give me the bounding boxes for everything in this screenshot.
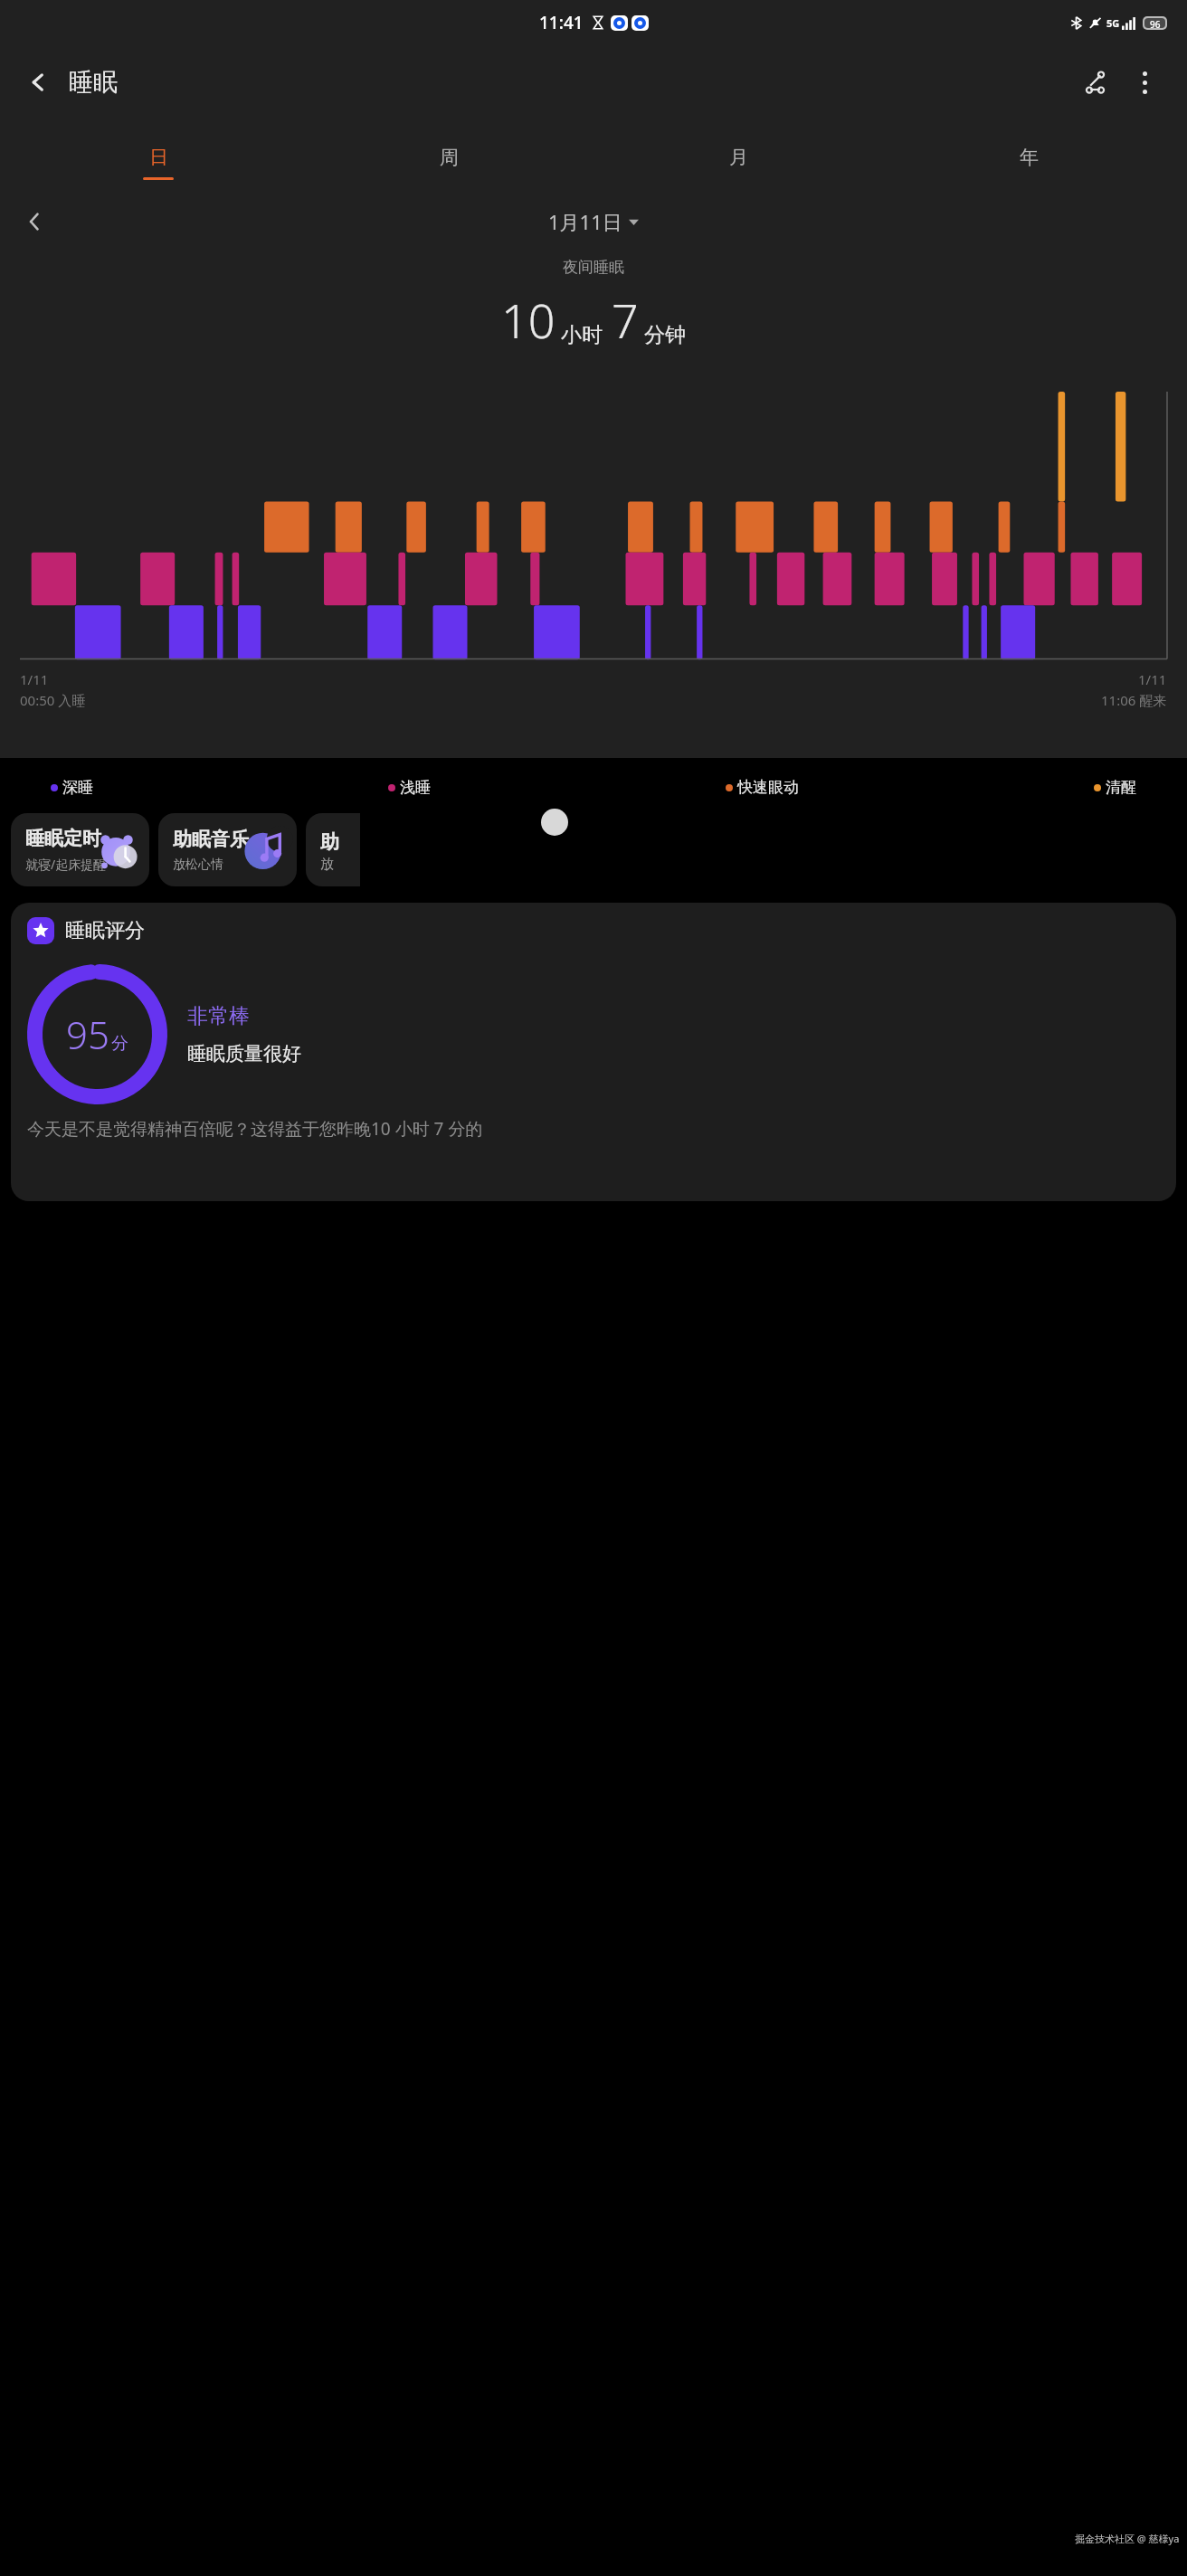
button[interactable]: 浅睡: [388, 778, 431, 797]
staticText: 7: [612, 288, 639, 352]
button[interactable]: 周: [424, 146, 473, 180]
button[interactable]: 1月11日: [548, 208, 639, 235]
staticText: 分: [111, 1033, 128, 1055]
button[interactable]: 助眠音乐: [158, 813, 297, 886]
staticText: 睡眠定时: [25, 827, 101, 850]
staticText: 睡眠质量很好: [187, 1042, 301, 1065]
staticText: 深睡: [62, 778, 93, 797]
staticText: 1月11日: [548, 208, 622, 235]
staticText: 助眠音乐: [173, 828, 249, 851]
button[interactable]: Back: [16, 61, 60, 104]
staticText: 10: [501, 288, 556, 352]
staticText: 浅睡: [400, 778, 431, 797]
staticText: 睡眠评分: [65, 918, 145, 943]
staticText: 1/11: [1138, 670, 1167, 688]
staticText: 00:50 入睡: [20, 691, 86, 709]
staticText: 掘金技术社区 @ 慈様ya: [1075, 2532, 1180, 2545]
button[interactable]: 睡眠评分: [11, 903, 1176, 1201]
staticText: 放: [320, 856, 334, 873]
staticText: 11:41: [539, 11, 584, 34]
staticText: 日: [149, 146, 168, 169]
button[interactable]: 睡眠定时: [11, 813, 149, 886]
button[interactable]: Scroll handle: [541, 809, 568, 836]
staticText: 月: [729, 146, 748, 169]
button[interactable]: 助: [306, 813, 360, 886]
staticText: 11:06 醒来: [1101, 691, 1167, 709]
staticText: 夜间睡眠: [0, 258, 1187, 277]
staticText: 非常棒: [187, 1003, 250, 1029]
staticText: 小时: [561, 322, 603, 348]
button[interactable]: Share: [1073, 61, 1116, 104]
button[interactable]: 年: [1004, 146, 1053, 180]
staticText: 今天是不是觉得精神百倍呢？这得益于您昨晚10 小时 7 分的: [27, 1117, 483, 1141]
button[interactable]: Previous day: [13, 200, 56, 243]
staticText: 就寝/起床提醒: [25, 856, 107, 873]
button[interactable]: More options: [1124, 62, 1165, 103]
staticText: 年: [1020, 146, 1039, 169]
button[interactable]: 日: [134, 146, 183, 180]
staticText: 睡眠: [69, 67, 118, 98]
staticText: 周: [440, 146, 459, 169]
staticText: 快速眼动: [737, 778, 799, 797]
button[interactable]: 深睡: [51, 778, 93, 797]
staticText: 分钟: [644, 322, 686, 348]
staticText: 助: [320, 830, 339, 854]
staticText: 1/11: [20, 670, 49, 688]
staticText: 5G: [1106, 16, 1120, 30]
button[interactable]: 快速眼动: [726, 778, 799, 797]
staticText: 95: [66, 1009, 109, 1060]
staticText: 放松心情: [173, 857, 223, 873]
button[interactable]: 月: [714, 146, 763, 180]
staticText: 96: [1150, 18, 1161, 28]
staticText: 清醒: [1106, 778, 1136, 797]
button[interactable]: 清醒: [1094, 778, 1136, 797]
